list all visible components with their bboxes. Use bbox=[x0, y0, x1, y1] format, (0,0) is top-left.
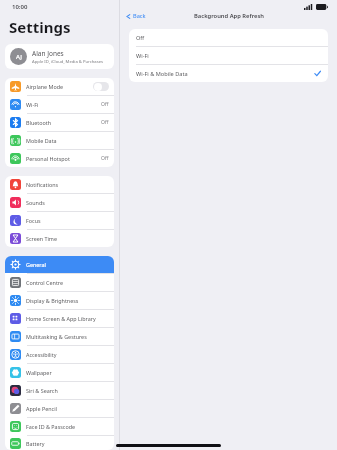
staticText: Apple ID, iCloud, Media & Purchases bbox=[32, 59, 104, 65]
staticText: Notifications bbox=[26, 181, 59, 188]
button[interactable]: Airplane Mode bbox=[5, 78, 114, 95]
staticText: Off bbox=[101, 101, 109, 108]
button[interactable]: Mobile Data bbox=[5, 132, 114, 149]
staticText: Wi-Fi bbox=[136, 52, 149, 60]
staticText: Face ID & Passcode bbox=[26, 423, 76, 430]
staticText: Airplane Mode bbox=[26, 83, 64, 90]
button[interactable]: Focus bbox=[5, 212, 114, 229]
button[interactable]: Notifications bbox=[5, 176, 114, 193]
button[interactable]: Wi-Fi & Mobile Data bbox=[129, 65, 328, 82]
button[interactable]: Screen Time bbox=[5, 230, 114, 247]
staticText: Off bbox=[101, 119, 109, 126]
button[interactable]: Bluetooth bbox=[5, 114, 114, 131]
button[interactable]: Wi-Fi bbox=[5, 96, 114, 113]
staticText: General bbox=[26, 261, 46, 268]
button[interactable]: Control Centre bbox=[5, 274, 114, 291]
button[interactable]: Display & Brightness bbox=[5, 292, 114, 309]
button[interactable]: Back bbox=[120, 10, 152, 22]
staticText: Personal Hotspot bbox=[26, 155, 70, 162]
staticText: Background App Refresh bbox=[194, 12, 264, 20]
button[interactable]: Multitasking & Gestures bbox=[5, 328, 114, 345]
button[interactable]: Home Screen & App Library bbox=[5, 310, 114, 327]
staticText: Apple Pencil bbox=[26, 405, 57, 412]
staticText: Off bbox=[136, 34, 145, 42]
staticText: AJ bbox=[16, 53, 22, 61]
staticText: Home Screen & App Library bbox=[26, 315, 96, 322]
staticText: Back bbox=[133, 12, 146, 20]
button[interactable]: Wallpaper bbox=[5, 364, 114, 381]
staticText: 10:00 bbox=[12, 3, 28, 11]
button[interactable]: Wi-Fi bbox=[129, 47, 328, 64]
staticText: Off bbox=[101, 155, 109, 162]
button[interactable]: Airplane Mode toggle bbox=[93, 82, 109, 91]
button[interactable]: Face ID & Passcode bbox=[5, 418, 114, 435]
staticText: Screen Time bbox=[26, 235, 57, 242]
staticText: Alan Jones bbox=[32, 49, 64, 58]
button[interactable]: General bbox=[5, 256, 114, 273]
button[interactable]: Accessibility bbox=[5, 346, 114, 363]
staticText: Battery bbox=[26, 440, 45, 447]
staticText: Control Centre bbox=[26, 279, 64, 286]
button[interactable]: AJ bbox=[5, 44, 114, 69]
staticText: Multitasking & Gestures bbox=[26, 333, 87, 340]
staticText: Wi-Fi & Mobile Data bbox=[136, 70, 188, 78]
staticText: Accessibility bbox=[26, 351, 57, 358]
button[interactable]: Apple Pencil bbox=[5, 400, 114, 417]
button[interactable]: Battery bbox=[5, 436, 114, 450]
button[interactable]: Personal Hotspot bbox=[5, 150, 114, 167]
staticText: Siri & Search bbox=[26, 387, 58, 394]
staticText: Settings bbox=[9, 17, 71, 37]
staticText: Wi-Fi bbox=[26, 101, 39, 108]
button[interactable]: Sounds bbox=[5, 194, 114, 211]
staticText: Display & Brightness bbox=[26, 297, 79, 304]
staticText: Wallpaper bbox=[26, 369, 52, 376]
staticText: Bluetooth bbox=[26, 119, 52, 126]
staticText: Focus bbox=[26, 217, 41, 224]
staticText: Mobile Data bbox=[26, 137, 57, 144]
button[interactable]: Off bbox=[129, 29, 328, 46]
staticText: Sounds bbox=[26, 199, 45, 206]
button[interactable]: Siri & Search bbox=[5, 382, 114, 399]
